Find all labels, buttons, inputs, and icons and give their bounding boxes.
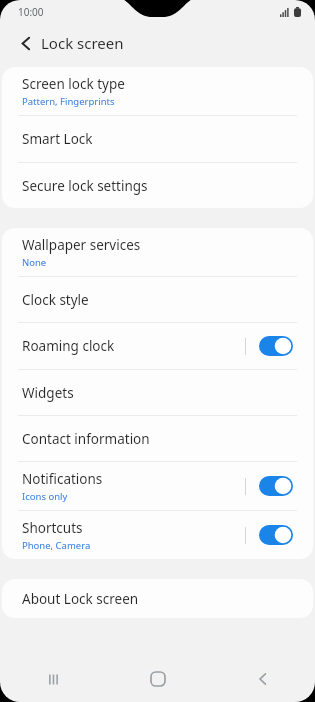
staticText: 10:00 <box>18 5 44 19</box>
staticText: Phone, Camera <box>22 539 91 552</box>
button[interactable]: Shortcuts <box>2 511 313 559</box>
staticText: Contact information <box>22 430 150 448</box>
button[interactable]: Back <box>11 28 41 58</box>
button[interactable]: Roaming clock switch <box>259 336 293 356</box>
staticText: Secure lock settings <box>22 177 148 195</box>
button[interactable]: Smart Lock <box>2 116 313 162</box>
button[interactable]: Screen lock type <box>2 67 313 115</box>
staticText: Screen lock type <box>22 75 125 93</box>
button[interactable]: Home <box>136 657 180 701</box>
staticText: Roaming clock <box>22 337 115 355</box>
staticText: Shortcuts <box>22 519 83 537</box>
button[interactable]: Shortcuts switch <box>259 525 293 545</box>
button[interactable]: Wallpaper services <box>2 228 313 276</box>
button[interactable]: Contact information <box>2 416 313 461</box>
staticText: Lock screen <box>41 33 124 53</box>
button[interactable]: Notifications switch <box>259 476 293 496</box>
button[interactable]: Recent apps <box>31 657 75 701</box>
button[interactable]: Roaming clock <box>2 323 313 369</box>
button[interactable]: Notifications <box>2 462 313 510</box>
staticText: Smart Lock <box>22 130 93 148</box>
staticText: Wallpaper services <box>22 236 141 254</box>
staticText: Clock style <box>22 291 89 309</box>
button[interactable]: Back <box>241 657 285 701</box>
button[interactable]: Clock style <box>2 277 313 322</box>
button[interactable]: Secure lock settings <box>2 163 313 208</box>
staticText: Pattern, Fingerprints <box>22 95 115 108</box>
staticText: Widgets <box>22 384 74 402</box>
staticText: Notifications <box>22 470 103 488</box>
staticText: None <box>22 256 47 269</box>
button[interactable]: Widgets <box>2 370 313 415</box>
staticText: Icons only <box>22 490 68 503</box>
button[interactable]: About Lock screen <box>2 579 313 618</box>
staticText: About Lock screen <box>22 590 139 608</box>
